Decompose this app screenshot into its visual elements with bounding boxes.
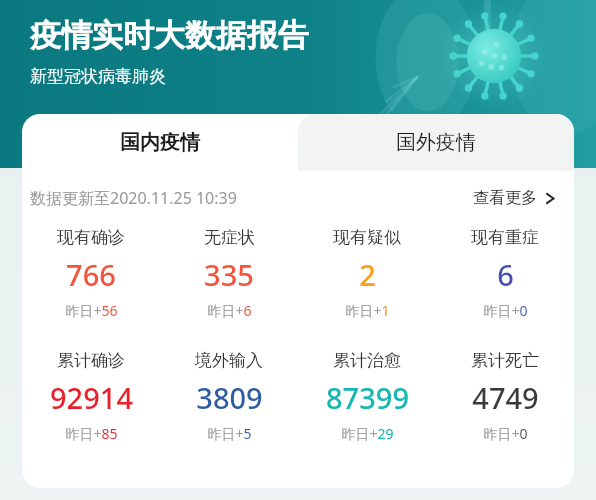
staticText: 境外输入 <box>195 350 263 371</box>
staticText: 现有重症 <box>471 227 539 248</box>
staticText: 92914 <box>50 378 133 417</box>
button[interactable]: 累计死亡 <box>436 348 574 445</box>
staticText: 2 <box>359 255 376 294</box>
staticText: 昨日+5 <box>207 424 252 443</box>
staticText: 国内疫情 <box>120 130 200 155</box>
staticText: 疫情实时大数据报告 <box>30 16 309 55</box>
staticText: 4749 <box>472 378 539 417</box>
button[interactable]: 现有重症 <box>436 225 574 322</box>
staticText: 昨日+0 <box>483 424 528 443</box>
staticText: 累计治愈 <box>333 350 401 371</box>
staticText: 昨日+1 <box>345 301 390 320</box>
button[interactable]: 国内疫情 <box>22 114 298 171</box>
staticText: 昨日+56 <box>65 301 118 320</box>
staticText: 无症状 <box>204 227 255 248</box>
staticText: 335 <box>204 255 254 294</box>
button[interactable]: 查看更多 <box>469 184 560 212</box>
staticText: 数据更新至2020.11.25 10:39 <box>30 187 237 209</box>
button[interactable]: 累计治愈 <box>298 348 436 445</box>
staticText: 国外疫情 <box>396 130 476 155</box>
staticText: 87399 <box>326 378 409 417</box>
staticText: 昨日+29 <box>341 424 394 443</box>
button[interactable]: 累计确诊 <box>22 348 160 445</box>
button[interactable]: 现有疑似 <box>298 225 436 322</box>
button[interactable]: 无症状 <box>160 225 298 322</box>
button[interactable]: 国外疫情 <box>298 114 574 171</box>
staticText: 现有疑似 <box>333 227 401 248</box>
staticText: 累计确诊 <box>57 350 125 371</box>
staticText: 昨日+6 <box>207 301 252 320</box>
staticText: 3809 <box>196 378 263 417</box>
staticText: 昨日+0 <box>483 301 528 320</box>
button[interactable]: 境外输入 <box>160 348 298 445</box>
staticText: 766 <box>66 255 116 294</box>
staticText: 现有确诊 <box>57 227 125 248</box>
other: View more <box>545 193 556 204</box>
staticText: 累计死亡 <box>471 350 539 371</box>
staticText: 6 <box>497 255 514 294</box>
button[interactable]: 现有确诊 <box>22 225 160 322</box>
staticText: 昨日+85 <box>65 424 118 443</box>
staticText: 新型冠状病毒肺炎 <box>30 66 166 87</box>
staticText: 查看更多 <box>473 188 537 208</box>
